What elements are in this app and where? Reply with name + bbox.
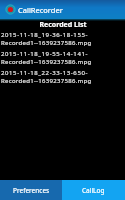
staticText: CallRecorder bbox=[18, 5, 63, 15]
button[interactable]: 2015-11-18_22-33-13-650- bbox=[0, 69, 125, 85]
staticText: CallLog bbox=[82, 186, 105, 195]
button[interactable]: Record call bbox=[5, 4, 16, 15]
staticText: 2015-11-18_19-55-14-141- bbox=[1, 50, 89, 58]
staticText: Preferences bbox=[13, 186, 50, 195]
button[interactable]: Preferences bbox=[0, 180, 62, 200]
staticText: Recorded List bbox=[39, 20, 87, 27]
staticText: 2015-11-18_19-36-18-155- bbox=[1, 31, 89, 39]
staticText: 2015-11-18_22-33-13-650- bbox=[1, 69, 89, 77]
staticText: Recorded1--1639237586.mpg bbox=[1, 58, 92, 66]
staticText: Recorded1--1639237586.mpg bbox=[1, 39, 92, 47]
staticText: Recorded1--1639237586.mpg bbox=[1, 77, 92, 85]
button[interactable]: 2015-11-18_19-55-14-141- bbox=[0, 50, 125, 66]
button[interactable]: CallLog bbox=[62, 180, 125, 200]
button[interactable]: 2015-11-18_19-36-18-155- bbox=[0, 31, 125, 47]
